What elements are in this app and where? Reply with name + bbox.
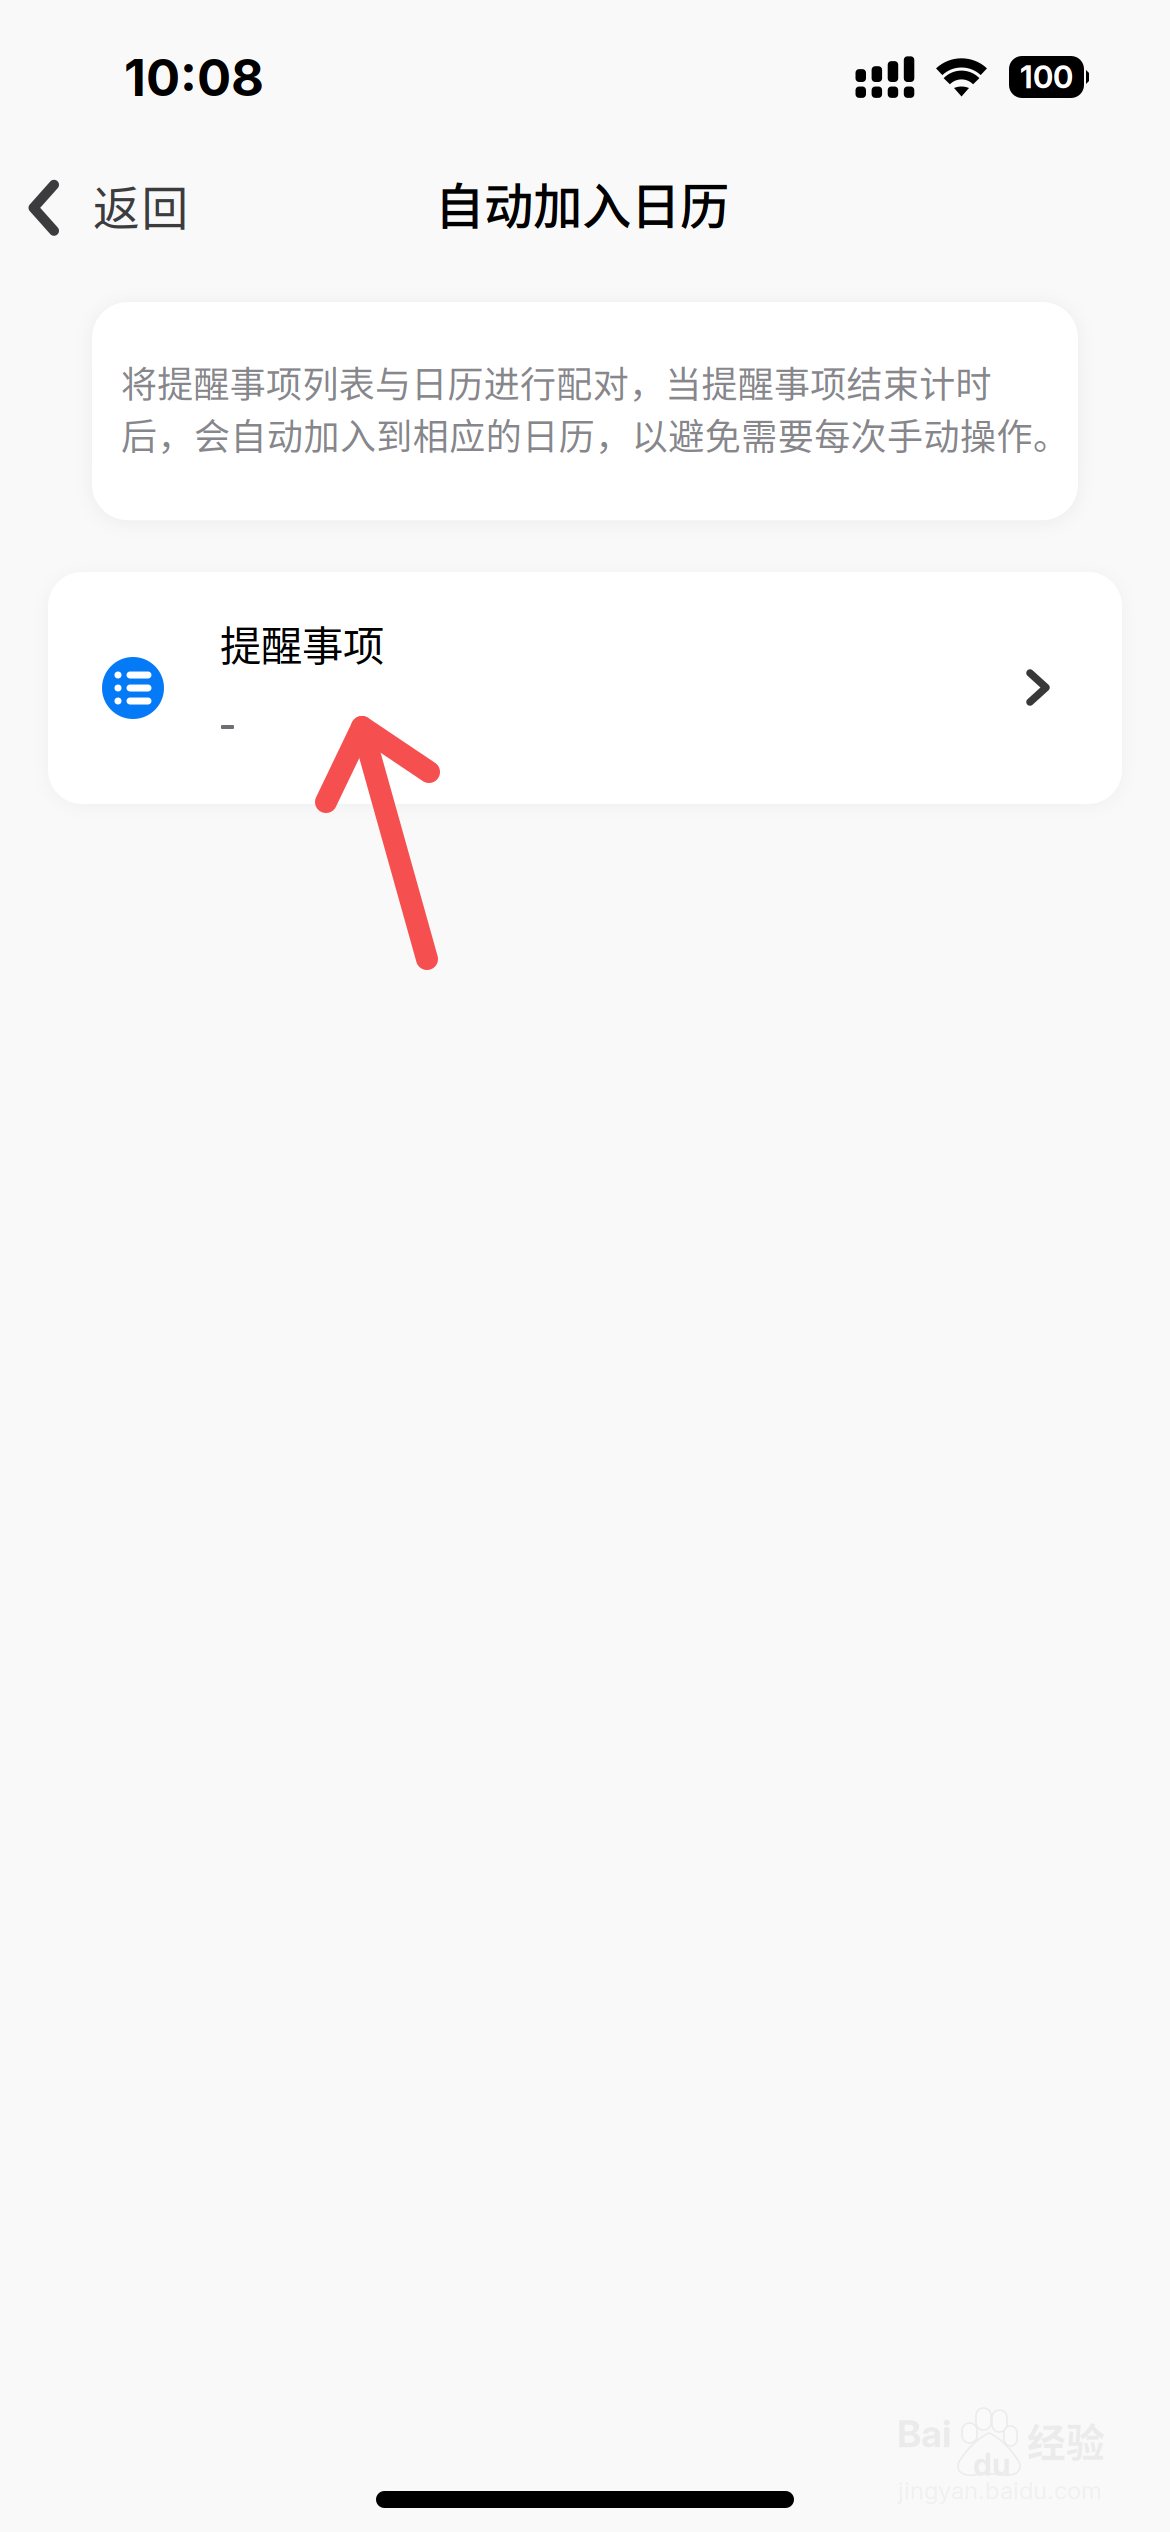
staticText: Bai xyxy=(897,2411,951,2456)
staticText: jingyan.baidu.com xyxy=(898,2476,1102,2505)
staticText: 将提醒事项列表与日历进行配对，当提醒事项结束计时 xyxy=(121,356,991,408)
staticText: 提醒事项 xyxy=(220,613,384,673)
button[interactable]: 返回 xyxy=(16,160,201,256)
staticText: 经验 xyxy=(1027,2412,1105,2468)
staticText: 100 xyxy=(1020,58,1073,95)
staticText: 后，会自动加入到相应的日历，以避免需要每次手动操作。 xyxy=(121,408,1069,460)
button[interactable]: 提醒事项 xyxy=(48,572,1122,804)
staticText: du xyxy=(973,2446,1011,2483)
staticText: 自动加入日历 xyxy=(435,167,729,238)
staticText: 10:08 xyxy=(124,47,264,108)
staticText: 返回 xyxy=(93,171,189,239)
